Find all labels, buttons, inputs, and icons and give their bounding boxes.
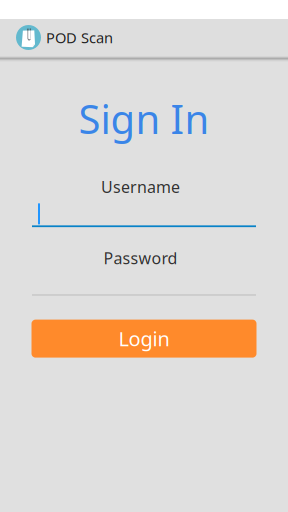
staticText: Login	[118, 325, 169, 352]
button[interactable]: Password field	[32, 271, 256, 296]
staticText: Password	[103, 247, 177, 269]
button[interactable]: Username field	[32, 202, 256, 227]
button[interactable]: POD Scan	[0, 19, 113, 50]
staticText: Sign In	[78, 92, 209, 145]
button[interactable]: Login	[31, 320, 256, 358]
staticText: Username	[101, 176, 180, 197]
staticText: POD Scan	[46, 28, 113, 47]
